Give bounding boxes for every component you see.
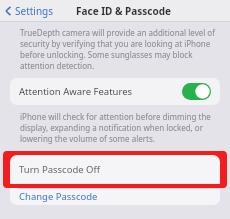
staticText: Settings [15, 4, 54, 18]
staticText: Attention Aware Features [19, 85, 133, 98]
staticText: Change Passcode [19, 190, 98, 203]
button[interactable]: Attention Aware Features toggle, on [182, 83, 211, 100]
button[interactable]: Turn Passcode Off [10, 155, 220, 184]
button[interactable]: Attention Aware Features [10, 78, 220, 105]
staticText: iPhone will check for attention before d… [20, 111, 216, 144]
staticText: Face ID & Passcode [76, 4, 172, 18]
button[interactable]: Change Passcode [10, 188, 220, 205]
staticText: Turn Passcode Off [19, 163, 101, 176]
button[interactable]: Settings [4, 4, 54, 18]
staticText: TrueDepth camera will provide an additio… [20, 27, 216, 71]
